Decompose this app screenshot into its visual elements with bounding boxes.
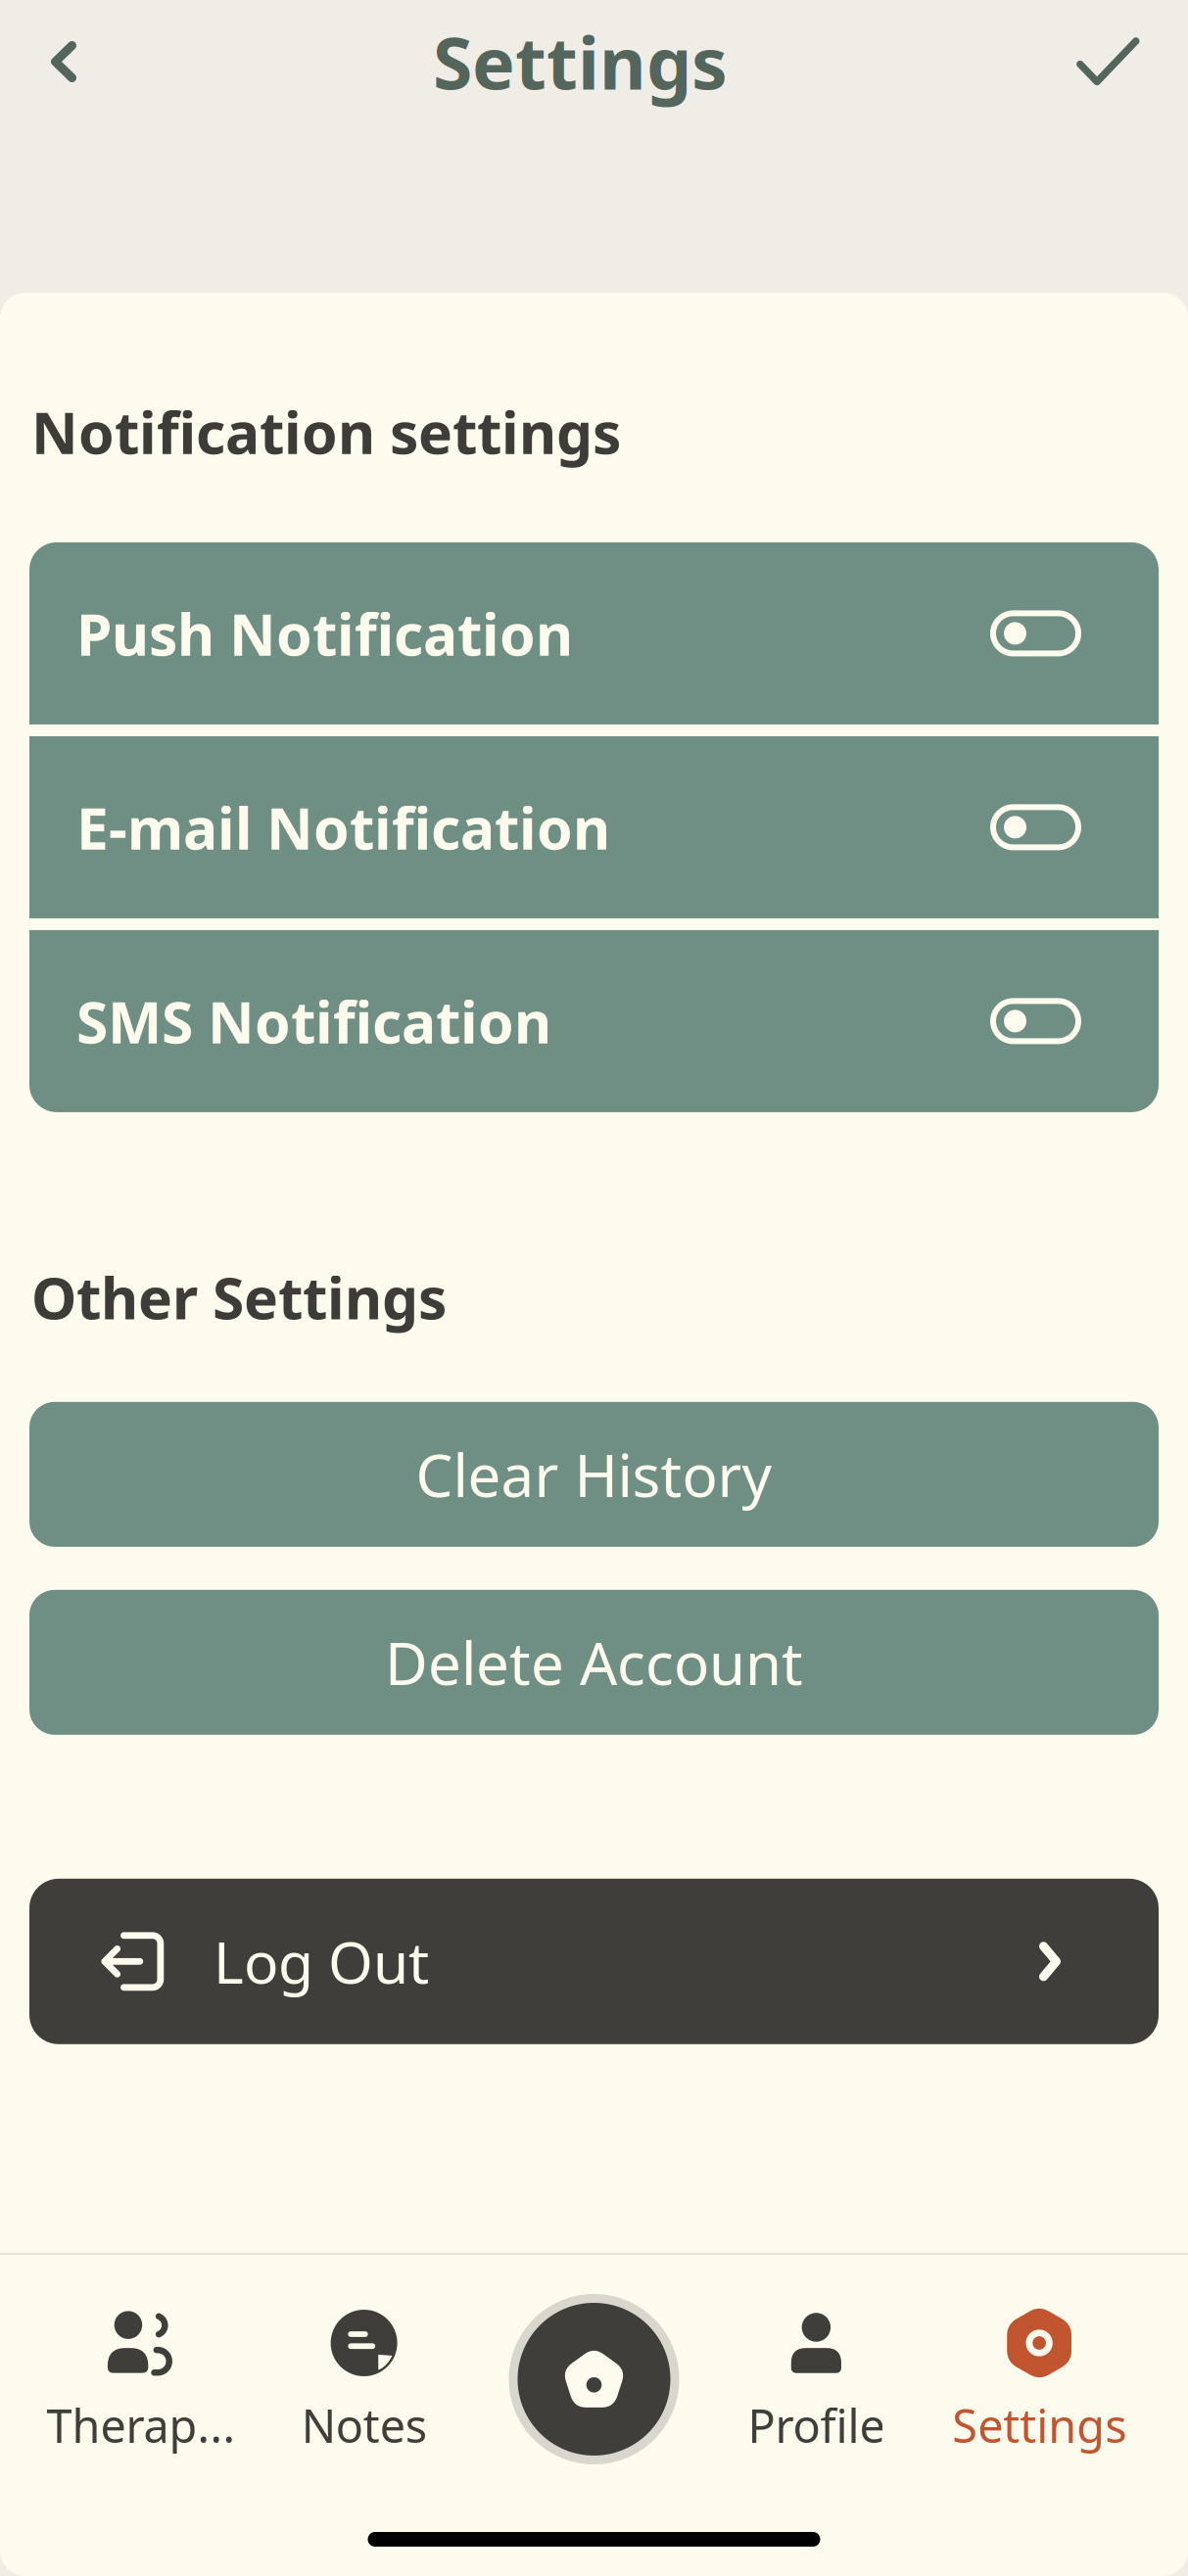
button[interactable]: Clear History [29,1402,1159,1547]
button[interactable]: Settings [928,2309,1151,2456]
button[interactable]: Notes [252,2309,476,2456]
staticText: Delete Account [385,1623,803,1701]
staticText: Clear History [416,1435,772,1513]
staticText: Push Notification [76,595,573,672]
staticText: Profile [748,2395,885,2456]
button[interactable]: Log Out [29,1879,1159,2044]
staticText: SMS Notification [76,983,551,1059]
button[interactable]: Profile [705,2309,928,2456]
button[interactable]: Delete Account [29,1590,1159,1735]
staticText: Notification settings [31,394,621,470]
button[interactable]: SMS Notification [29,930,1159,1112]
button[interactable]: Back [0,18,119,106]
button[interactable]: Therap... [29,2309,252,2456]
button[interactable]: Home [509,2294,679,2464]
button[interactable]: Push Notification [29,542,1159,724]
staticText: Settings [952,2395,1126,2456]
staticText: Therap... [46,2395,235,2456]
button[interactable]: Done [1033,13,1188,111]
button[interactable]: E-mail Notification [29,736,1159,918]
staticText: Settings [433,14,728,109]
staticText: E-mail Notification [76,789,610,865]
staticText: Log Out [214,1923,429,2000]
staticText: Other Settings [31,1259,447,1335]
staticText: Notes [301,2395,427,2456]
